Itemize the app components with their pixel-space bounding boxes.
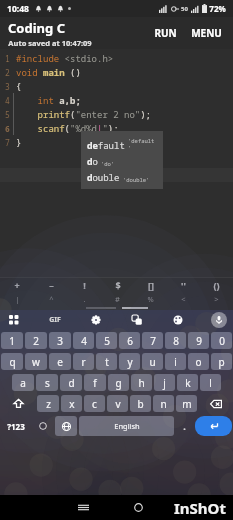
- button[interactable]: m: [176, 395, 197, 412]
- button[interactable]: w: [25, 353, 47, 370]
- staticText: 6: [127, 334, 133, 348]
- button[interactable]: %: [134, 292, 167, 306]
- button[interactable]: 0: [211, 332, 232, 349]
- staticText: 4: [81, 334, 87, 348]
- button[interactable]: >: [200, 292, 233, 306]
- button[interactable]: double: [87, 169, 157, 185]
- staticText: y: [127, 355, 133, 369]
- button[interactable]: Shift: [1, 395, 35, 412]
- button[interactable]: 9: [188, 332, 209, 349]
- button[interactable]: |: [0, 292, 34, 306]
- button[interactable]: 7: [142, 332, 163, 349]
- button[interactable]: j: [154, 374, 175, 391]
- button[interactable]: Recents: [56, 495, 111, 520]
- button[interactable]: u: [142, 353, 163, 370]
- button[interactable]: Theme: [170, 312, 186, 328]
- button[interactable]: 2: [25, 332, 47, 349]
- staticText: a: [20, 376, 26, 390]
- button[interactable]: 3: [49, 332, 71, 349]
- button[interactable]: Enter: [195, 416, 232, 436]
- button[interactable]: GIF: [46, 312, 64, 328]
- button[interactable]: Voice input: [211, 312, 227, 328]
- staticText: 'default': [128, 137, 157, 151]
- button[interactable]: '': [167, 278, 200, 292]
- button[interactable]: t: [96, 353, 117, 370]
- staticText: –: [49, 279, 54, 291]
- button[interactable]: Backspace: [199, 395, 232, 412]
- button[interactable]: q: [1, 353, 23, 370]
- button[interactable]: []: [134, 278, 167, 292]
- button[interactable]: Settings: [88, 312, 104, 328]
- button[interactable]: o: [188, 353, 209, 370]
- staticText: do: [87, 155, 98, 167]
- staticText: l: [209, 376, 212, 390]
- button[interactable]: Apps: [6, 312, 22, 328]
- button[interactable]: 6: [119, 332, 140, 349]
- staticText: d: [68, 376, 75, 390]
- staticText: 5: [5, 109, 10, 120]
- button[interactable]: d: [60, 374, 82, 391]
- button[interactable]: Emoji: [32, 416, 54, 436]
- staticText: f: [93, 376, 97, 390]
- button[interactable]: l: [200, 374, 221, 391]
- button[interactable]: (): [200, 278, 233, 292]
- staticText: .: [83, 294, 86, 304]
- button[interactable]: n: [153, 395, 174, 412]
- staticText: 1: [5, 53, 10, 64]
- staticText: 1: [9, 334, 15, 348]
- button[interactable]: !: [68, 278, 101, 292]
- button[interactable]: i: [165, 353, 186, 370]
- button[interactable]: .: [175, 416, 194, 436]
- button[interactable]: k: [177, 374, 198, 391]
- staticText: 7: [150, 334, 156, 348]
- button[interactable]: English: [79, 416, 174, 436]
- staticText: p: [218, 355, 225, 369]
- staticText: z: [46, 397, 51, 411]
- button[interactable]: $: [101, 278, 134, 292]
- button[interactable]: a: [12, 374, 34, 391]
- button[interactable]: <: [167, 292, 200, 306]
- button[interactable]: f: [84, 374, 106, 391]
- button[interactable]: MENU: [186, 20, 227, 46]
- button[interactable]: s: [36, 374, 58, 391]
- button[interactable]: v: [107, 395, 128, 412]
- staticText: c: [92, 397, 97, 411]
- button[interactable]: Change language: [55, 416, 77, 436]
- staticText: ?123: [7, 421, 25, 432]
- button[interactable]: default: [87, 135, 157, 153]
- button[interactable]: y: [119, 353, 140, 370]
- staticText: Auto saved at 10:47:09: [8, 38, 92, 48]
- staticText: RUN: [154, 26, 177, 40]
- button[interactable]: 4: [73, 332, 94, 349]
- button[interactable]: Translate: [129, 312, 145, 328]
- staticText: r: [81, 355, 86, 369]
- button[interactable]: do: [87, 153, 157, 169]
- button[interactable]: ?123: [0, 416, 32, 436]
- button[interactable]: –: [34, 278, 68, 292]
- button[interactable]: 8: [165, 332, 186, 349]
- button[interactable]: c: [84, 395, 105, 412]
- button[interactable]: +: [0, 278, 34, 292]
- button[interactable]: h: [131, 374, 152, 391]
- button[interactable]: 1: [1, 332, 23, 349]
- staticText: !: [83, 279, 86, 291]
- button[interactable]: 5: [96, 332, 117, 349]
- button[interactable]: ^: [34, 292, 68, 306]
- button[interactable]: e: [49, 353, 71, 370]
- staticText: printf("enter 2 no");: [16, 108, 152, 120]
- button[interactable]: #: [101, 292, 134, 306]
- button[interactable]: b: [130, 395, 151, 412]
- staticText: 9: [196, 334, 202, 348]
- button[interactable]: r: [73, 353, 94, 370]
- button[interactable]: RUN: [149, 20, 182, 46]
- button[interactable]: z: [37, 395, 59, 412]
- staticText: w: [32, 355, 40, 369]
- staticText: |: [15, 294, 20, 304]
- staticText: +: [14, 279, 20, 291]
- button[interactable]: g: [108, 374, 129, 391]
- staticText: g: [115, 376, 122, 390]
- button[interactable]: Home: [111, 495, 166, 520]
- button[interactable]: p: [211, 353, 232, 370]
- button[interactable]: x: [61, 395, 82, 412]
